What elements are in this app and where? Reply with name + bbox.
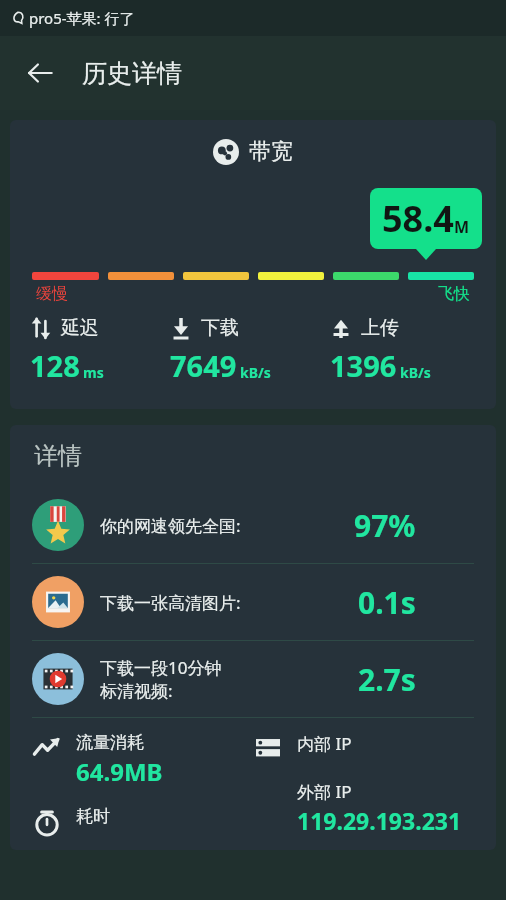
staticText: 0.1s [358, 582, 416, 623]
staticText: 流量消耗 [76, 732, 144, 753]
staticText: 飞快 [438, 284, 470, 304]
button[interactable]: 你的网速领先全国: [10, 487, 496, 563]
staticText: 1396 [330, 346, 397, 385]
staticText: 下载一张高清图片: [100, 591, 241, 614]
staticText: 详情 [34, 441, 82, 471]
staticText: kB/s [400, 363, 431, 382]
staticText: ms [83, 363, 104, 382]
staticText: 128 [30, 346, 80, 385]
staticText: 内部 IP [297, 732, 352, 755]
staticText: 标清视频: [100, 679, 173, 702]
staticText: 64.9MB [76, 755, 163, 788]
staticText: 下载一段10分钟 [100, 656, 222, 679]
staticText: 延迟 [61, 316, 99, 340]
staticText: 上传 [361, 316, 399, 340]
staticText: 97% [354, 505, 416, 546]
staticText: M [454, 216, 470, 238]
staticText: 119.29.193.231 [297, 805, 462, 836]
staticText: 58.4 [382, 194, 454, 243]
button[interactable]: 下载一段10分钟 [10, 641, 496, 717]
staticText: 带宽 [249, 138, 293, 166]
staticText: 你的网速领先全国: [100, 514, 241, 537]
staticText: 外部 IP [297, 780, 352, 803]
staticText: pro5-苹果: 行了 [29, 8, 135, 28]
staticText: 历史详情 [82, 58, 182, 89]
button[interactable]: 下载一张高清图片: [10, 564, 496, 640]
staticText: 7649 [170, 346, 237, 385]
staticText: 下载 [201, 316, 239, 340]
button[interactable]: Back [16, 49, 64, 97]
staticText: 缓慢 [36, 284, 68, 304]
staticText: kB/s [240, 363, 271, 382]
staticText: 2.7s [358, 659, 416, 700]
staticText: 耗时 [76, 806, 110, 827]
